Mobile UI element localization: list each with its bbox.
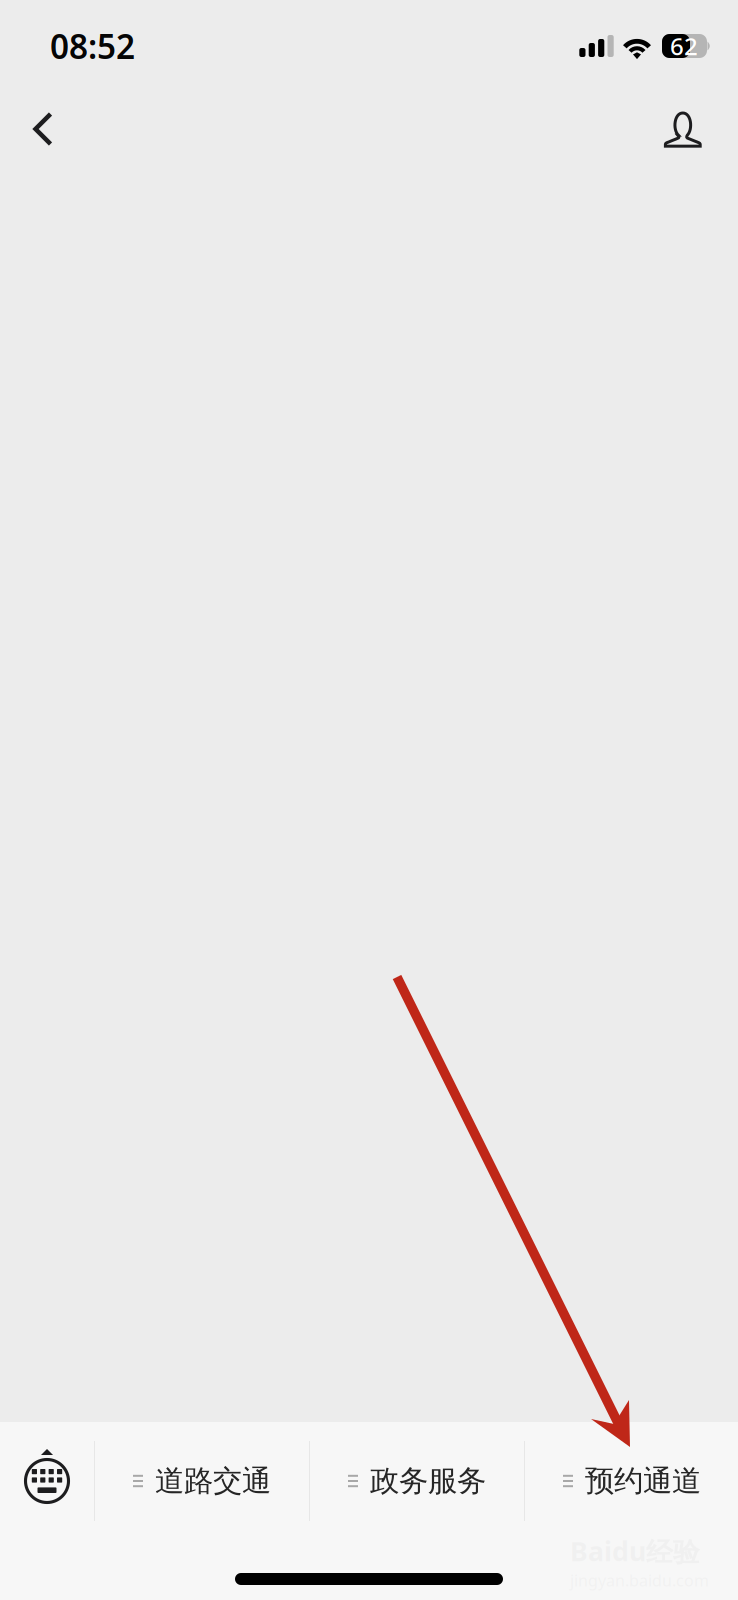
- button[interactable]: Keyboard: [0, 1432, 94, 1530]
- staticText: 62: [670, 30, 698, 62]
- button[interactable]: 预约通道: [525, 1432, 738, 1530]
- staticText: 政务服务: [370, 1463, 486, 1499]
- button[interactable]: 政务服务: [310, 1432, 524, 1530]
- staticText: 08:52: [50, 24, 135, 68]
- staticText: 预约通道: [585, 1463, 701, 1499]
- button[interactable]: Back: [5, 91, 81, 167]
- staticText: 道路交通: [155, 1463, 271, 1499]
- button[interactable]: Profile: [645, 91, 721, 167]
- button[interactable]: 道路交通: [95, 1432, 309, 1530]
